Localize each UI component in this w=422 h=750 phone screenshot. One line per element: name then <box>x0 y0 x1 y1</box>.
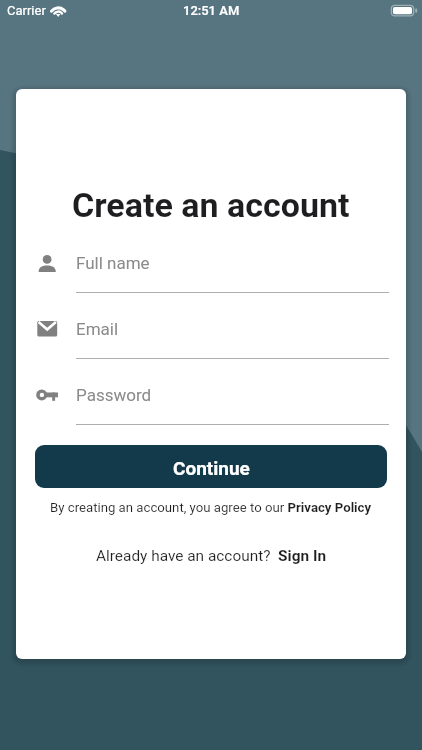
staticText: Full name <box>76 253 150 273</box>
button[interactable]: Continue <box>35 445 387 488</box>
other: Battery full <box>390 4 420 18</box>
staticText: Carrier <box>7 3 46 18</box>
other: Wi-Fi signal <box>52 3 70 19</box>
button[interactable]: Already have an account? Sign In <box>16 547 406 565</box>
staticText: Email <box>76 319 119 339</box>
staticText: Already have an account? Sign In <box>96 547 327 565</box>
staticText: Continue <box>173 457 250 479</box>
staticText: 12:51 AM <box>183 3 240 18</box>
button[interactable]: By creating an account, you agree to our… <box>16 500 406 515</box>
staticText: By creating an account, you agree to our… <box>50 500 372 515</box>
staticText: Create an account <box>72 185 350 225</box>
staticText: Password <box>76 385 152 405</box>
